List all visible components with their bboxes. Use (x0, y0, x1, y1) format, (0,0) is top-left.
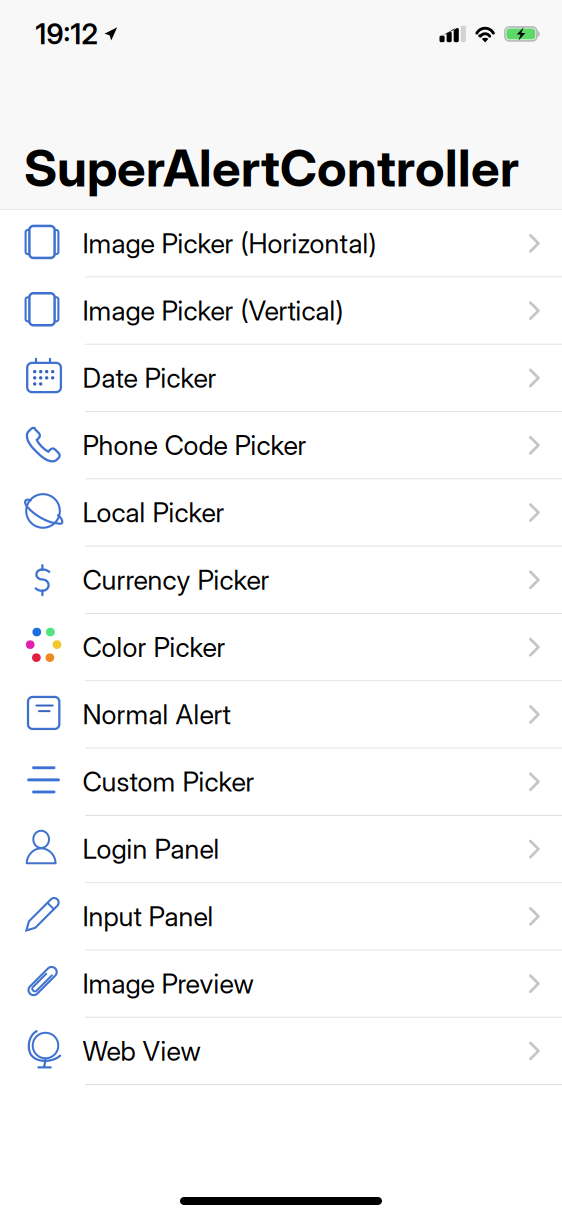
staticText: Image Picker (Vertical) (82, 294, 343, 327)
button[interactable]: Phone Code Picker (0, 412, 562, 479)
button[interactable]: Currency Picker (0, 547, 562, 614)
button[interactable]: Input Panel (0, 883, 562, 951)
staticText: Date Picker (82, 362, 216, 394)
button[interactable]: Color Picker (0, 614, 562, 681)
button[interactable]: Web View (0, 1018, 562, 1085)
staticText: Color Picker (82, 631, 225, 663)
button[interactable]: Local Picker (0, 479, 562, 547)
staticText: Custom Picker (82, 765, 254, 798)
staticText: Local Picker (82, 496, 224, 529)
button[interactable]: Login Panel (0, 816, 562, 883)
staticText: Currency Picker (82, 564, 269, 596)
staticText: Login Panel (82, 833, 219, 865)
staticText: SuperAlertController (24, 137, 519, 199)
button[interactable]: Image Picker (Horizontal) (0, 210, 562, 278)
staticText: Image Preview (82, 967, 253, 1000)
staticText: Web View (82, 1035, 200, 1067)
button[interactable]: Image Picker (Vertical) (0, 278, 562, 345)
button[interactable]: Image Preview (0, 951, 562, 1018)
staticText: Input Panel (82, 900, 213, 933)
button[interactable]: Custom Picker (0, 749, 562, 816)
staticText: Image Picker (Horizontal) (82, 227, 376, 260)
staticText: Normal Alert (82, 698, 230, 731)
button[interactable]: Normal Alert (0, 681, 562, 749)
staticText: Phone Code Picker (82, 429, 306, 462)
staticText: 19:12 (35, 17, 97, 51)
button[interactable]: Date Picker (0, 345, 562, 412)
